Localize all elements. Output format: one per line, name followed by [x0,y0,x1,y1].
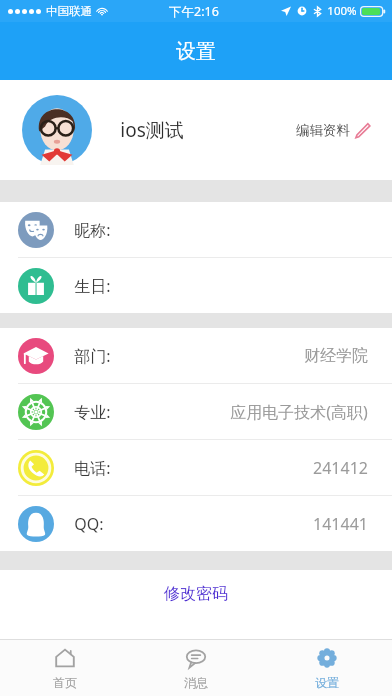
staticText: 生日: [74,275,111,297]
staticText: 141441 [313,513,368,535]
staticText: 首页 [53,675,77,690]
staticText: 电话: [74,457,111,479]
button[interactable]: 编辑资料 [292,118,374,143]
other: Nickname [18,212,54,248]
staticText: 设置 [176,39,216,64]
button[interactable]: Phone [0,440,392,495]
staticText: QQ: [74,513,104,535]
button[interactable]: Department [0,328,392,383]
button[interactable]: QQ [0,496,392,551]
staticText: ios测试 [120,117,184,143]
button[interactable]: Settings [261,640,392,696]
other: Birthday [18,268,54,304]
staticText: 241412 [313,457,368,479]
staticText: 修改密码 [164,584,228,604]
button[interactable]: 修改密码 [0,570,392,618]
other: QQ [18,506,54,542]
staticText: 编辑资料 [296,122,350,139]
other: Phone [18,450,54,486]
other: Department [18,338,54,374]
staticText: 下午2:16 [169,3,219,20]
button[interactable]: Nickname [0,202,392,257]
button[interactable]: Major [0,384,392,439]
staticText: 专业: [74,401,111,423]
button[interactable]: Birthday [0,258,392,313]
staticText: 中国联通 [46,4,92,18]
staticText: 昵称: [74,219,111,241]
staticText: 100% [327,3,357,19]
staticText: 部门: [74,345,111,367]
button[interactable]: ios测试 [0,80,392,180]
other: Major [18,394,54,430]
button[interactable]: Messages [130,640,261,696]
staticText: 设置 [315,675,339,690]
staticText: 财经学院 [304,346,368,366]
staticText: 应用电子技术(高职) [230,401,368,423]
button[interactable]: Home [0,640,130,696]
staticText: 消息 [184,675,208,690]
